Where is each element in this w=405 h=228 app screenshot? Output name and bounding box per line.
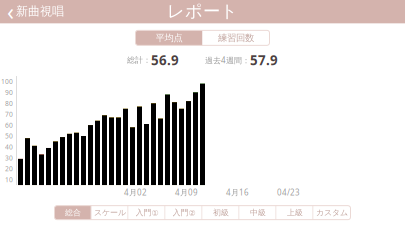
staticText: 入門②	[172, 208, 195, 218]
staticText: 56.9	[151, 51, 179, 69]
button[interactable]: 中級	[239, 206, 276, 220]
staticText: 4月09	[175, 187, 198, 198]
staticText: 上級	[287, 208, 303, 218]
button[interactable]: ‹	[0, 0, 71, 23]
button[interactable]: 入門②	[165, 206, 202, 220]
button[interactable]: 上級	[276, 206, 313, 220]
button[interactable]: 入門①	[128, 206, 165, 220]
staticText: 40	[5, 142, 13, 151]
button[interactable]: 平均点	[135, 30, 202, 45]
staticText: 初級	[213, 208, 229, 218]
staticText: 57.9	[250, 51, 278, 69]
staticText: 中級	[250, 208, 266, 218]
staticText: 過去4週間：	[205, 55, 250, 65]
staticText: 練習回数	[218, 32, 254, 44]
staticText: 80	[5, 99, 13, 108]
staticText: 50	[5, 132, 13, 140]
staticText: 新曲視唱	[16, 4, 64, 19]
staticText: スケール	[94, 208, 126, 218]
staticText: 100	[1, 77, 13, 86]
staticText: 04/23	[277, 187, 300, 198]
button[interactable]: スケール	[91, 206, 128, 220]
staticText: 総合	[65, 208, 81, 218]
staticText: 入門①	[135, 208, 158, 218]
staticText: 60	[5, 121, 13, 130]
staticText: 総計：	[127, 55, 151, 65]
staticText: 90	[5, 88, 13, 97]
staticText: レポート	[167, 1, 238, 22]
staticText: 4月16	[226, 187, 249, 198]
staticText: 30	[5, 153, 13, 162]
button[interactable]: カスタム	[313, 206, 350, 220]
button[interactable]: 初級	[202, 206, 239, 220]
staticText: 70	[5, 110, 13, 119]
button[interactable]: 総合	[54, 206, 91, 220]
staticText: 平均点	[155, 32, 182, 44]
button[interactable]: 練習回数	[202, 30, 269, 45]
staticText: 10	[5, 175, 13, 184]
staticText: カスタム	[316, 208, 348, 218]
staticText: 20	[5, 164, 13, 173]
staticText: ‹	[7, 0, 14, 26]
staticText: 4月02	[124, 187, 147, 198]
